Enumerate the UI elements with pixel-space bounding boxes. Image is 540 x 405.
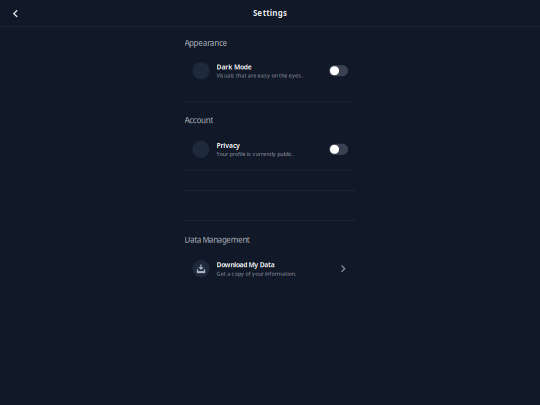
- staticText: Visuals that are easy on the eyes.: [216, 72, 302, 79]
- staticText: Appearance: [184, 37, 227, 48]
- staticText: Dark Mode: [216, 62, 252, 71]
- staticText: Your profile is currently public.: [216, 150, 293, 158]
- staticText: Download My Data: [216, 260, 275, 269]
- staticText: Account: [184, 115, 213, 125]
- button[interactable]: Download My Data: [184, 245, 355, 289]
- button[interactable]: Dark Mode: [184, 48, 355, 101]
- button[interactable]: Privacy: [184, 125, 355, 170]
- staticText: Data Management: [184, 234, 250, 245]
- button[interactable]: Back: [0, 0, 28, 26]
- staticText: Privacy: [216, 141, 240, 150]
- staticText: Get a copy of your information.: [216, 270, 296, 277]
- staticText: Settings: [253, 8, 287, 18]
